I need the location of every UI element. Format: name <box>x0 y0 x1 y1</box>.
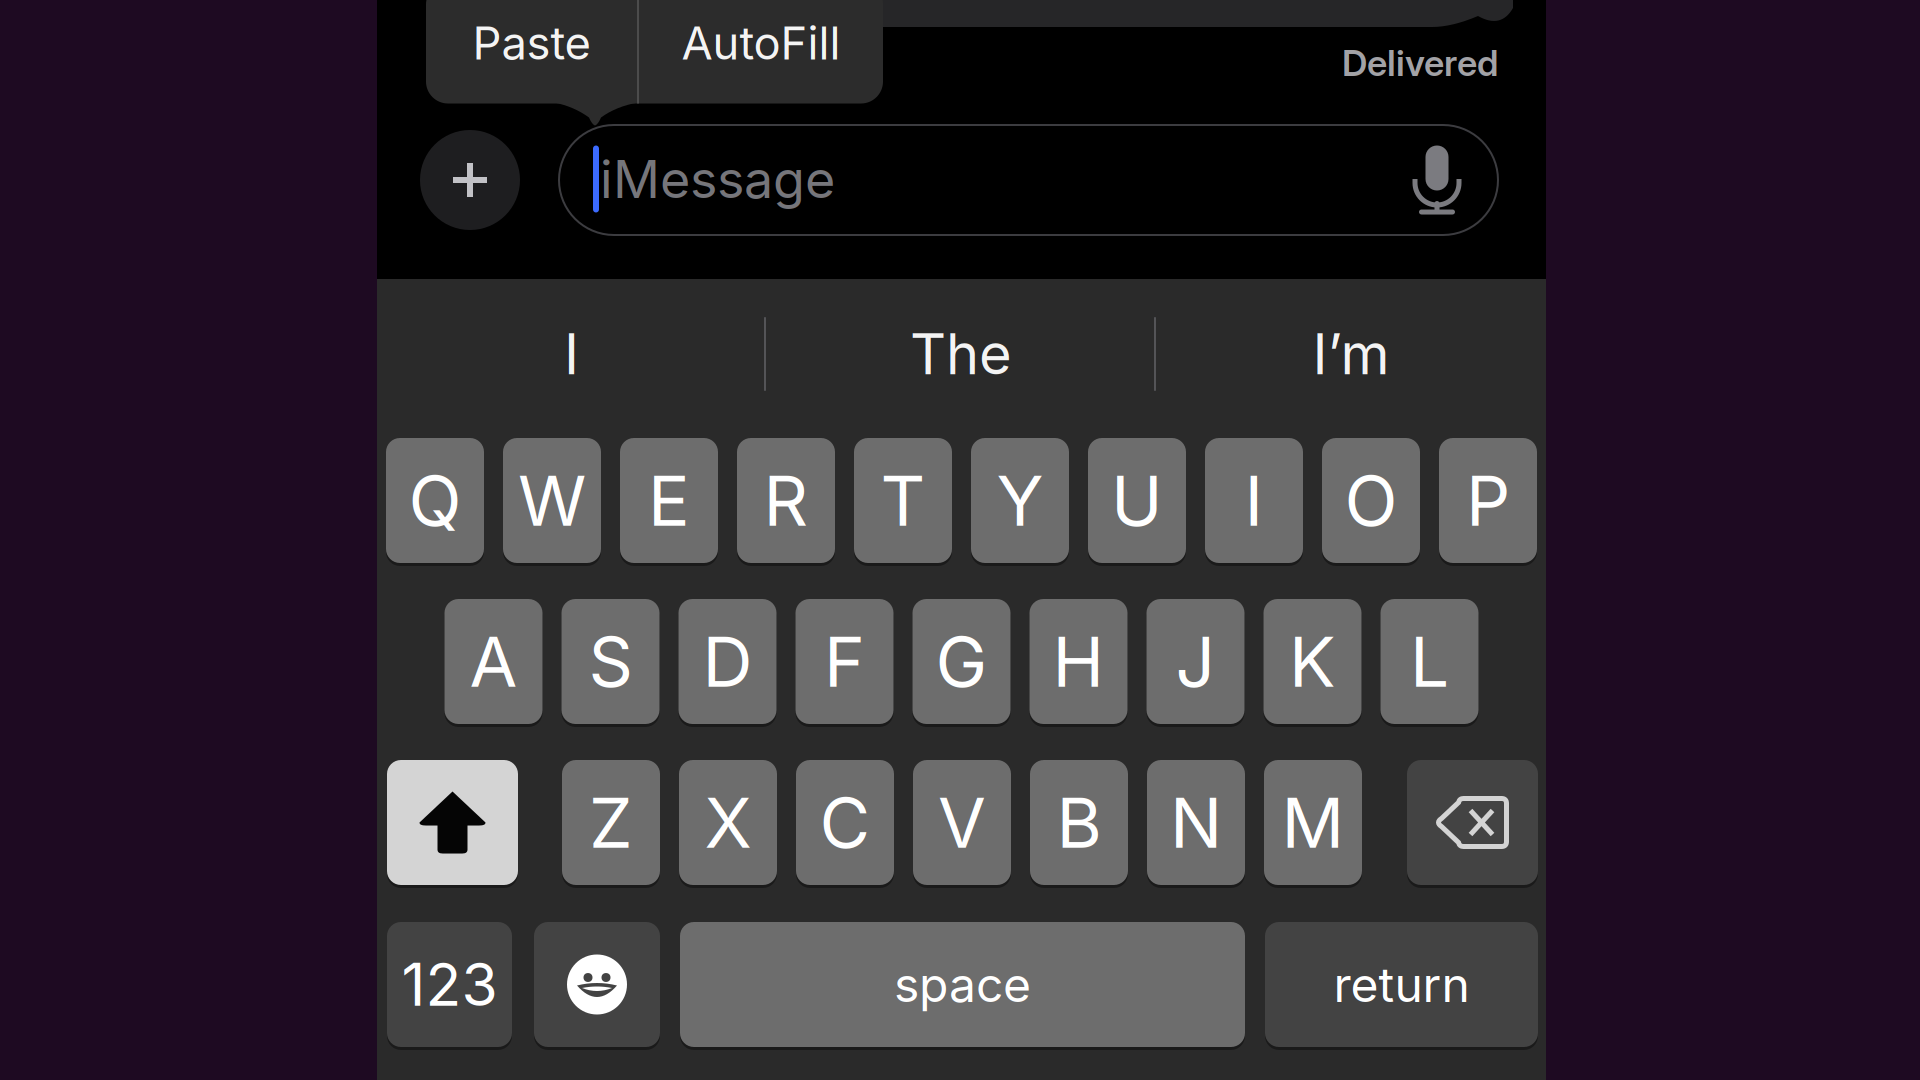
button[interactable]: Shift <box>387 760 518 885</box>
staticText: J <box>1175 620 1215 703</box>
button[interactable]: Delete <box>1407 760 1538 885</box>
staticText: Y <box>996 459 1043 542</box>
staticText: AutoFill <box>681 16 840 70</box>
button[interactable]: A <box>444 599 542 724</box>
button[interactable]: C <box>796 760 894 885</box>
staticText: S <box>588 620 632 703</box>
button[interactable]: H <box>1029 599 1127 724</box>
button[interactable]: Q <box>386 438 484 563</box>
staticText: I <box>1244 459 1263 542</box>
button[interactable]: Y <box>971 438 1069 563</box>
staticText: return <box>1333 955 1469 1014</box>
staticText: M <box>1281 781 1344 864</box>
button[interactable]: Apps and attachments <box>420 130 520 230</box>
staticText: Delivered <box>1342 41 1498 85</box>
button[interactable]: S <box>561 599 659 724</box>
button[interactable]: I’m <box>1156 279 1546 429</box>
button[interactable]: N <box>1147 760 1245 885</box>
button[interactable]: K <box>1263 599 1361 724</box>
button[interactable]: J <box>1146 599 1244 724</box>
staticText: iMessage <box>600 147 835 210</box>
staticText: E <box>648 459 690 542</box>
staticText: Z <box>589 781 633 864</box>
staticText: W <box>518 459 586 542</box>
button[interactable]: I <box>1205 438 1303 563</box>
staticText: C <box>819 781 870 864</box>
button[interactable]: return <box>1265 922 1538 1047</box>
staticText: X <box>704 781 751 864</box>
staticText: Q <box>408 459 461 542</box>
staticText: T <box>880 459 925 542</box>
button[interactable]: I <box>377 279 766 429</box>
staticText: 123 <box>401 949 497 1020</box>
button[interactable]: X <box>679 760 777 885</box>
button[interactable]: B <box>1030 760 1128 885</box>
staticText: O <box>1344 459 1397 542</box>
staticText: A <box>469 620 517 703</box>
button[interactable]: AutoFill <box>639 0 883 103</box>
staticText: V <box>938 781 986 864</box>
staticText: K <box>1289 620 1336 703</box>
button[interactable]: 123 <box>387 922 512 1047</box>
staticText: B <box>1056 781 1101 864</box>
staticText: N <box>1170 781 1222 864</box>
button[interactable]: M <box>1264 760 1362 885</box>
button[interactable]: W <box>503 438 601 563</box>
staticText: I <box>564 320 579 388</box>
button[interactable]: The <box>766 279 1156 429</box>
staticText: H <box>1052 620 1104 703</box>
button[interactable]: L <box>1380 599 1478 724</box>
button[interactable]: U <box>1088 438 1186 563</box>
button[interactable]: E <box>620 438 718 563</box>
button[interactable]: T <box>854 438 952 563</box>
button[interactable]: Paste <box>426 0 637 103</box>
button[interactable]: space <box>680 922 1245 1047</box>
staticText: space <box>894 955 1031 1014</box>
staticText: F <box>824 620 865 703</box>
staticText: The <box>910 320 1012 388</box>
staticText: Paste <box>472 16 590 70</box>
button[interactable]: Z <box>562 760 660 885</box>
button[interactable]: V <box>913 760 1011 885</box>
staticText: D <box>702 620 752 703</box>
button[interactable]: D <box>678 599 776 724</box>
staticText: R <box>763 459 808 542</box>
button[interactable]: P <box>1439 438 1537 563</box>
button[interactable]: F <box>795 599 893 724</box>
button[interactable]: Emoji keyboard <box>534 922 660 1047</box>
button[interactable]: R <box>737 438 835 563</box>
button[interactable]: G <box>912 599 1010 724</box>
button[interactable]: iMessage text field <box>559 125 1498 235</box>
staticText: L <box>1410 620 1449 703</box>
staticText: I’m <box>1312 320 1389 388</box>
staticText: P <box>1466 459 1510 542</box>
staticText: G <box>935 620 987 703</box>
button[interactable]: O <box>1322 438 1420 563</box>
staticText: U <box>1111 459 1163 542</box>
